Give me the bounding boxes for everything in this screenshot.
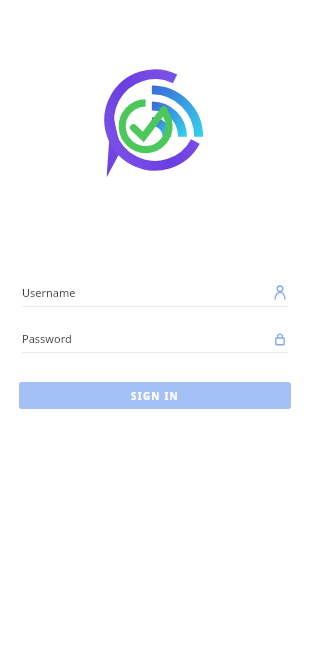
button[interactable]: Password xyxy=(22,324,288,370)
other: Username xyxy=(272,284,288,300)
button[interactable]: Username xyxy=(22,278,288,324)
staticText: Username xyxy=(22,285,76,300)
staticText: SIGN IN xyxy=(131,389,179,403)
staticText: Password xyxy=(22,331,72,346)
button[interactable]: SIGN IN xyxy=(19,382,291,409)
other: Password xyxy=(272,330,288,346)
